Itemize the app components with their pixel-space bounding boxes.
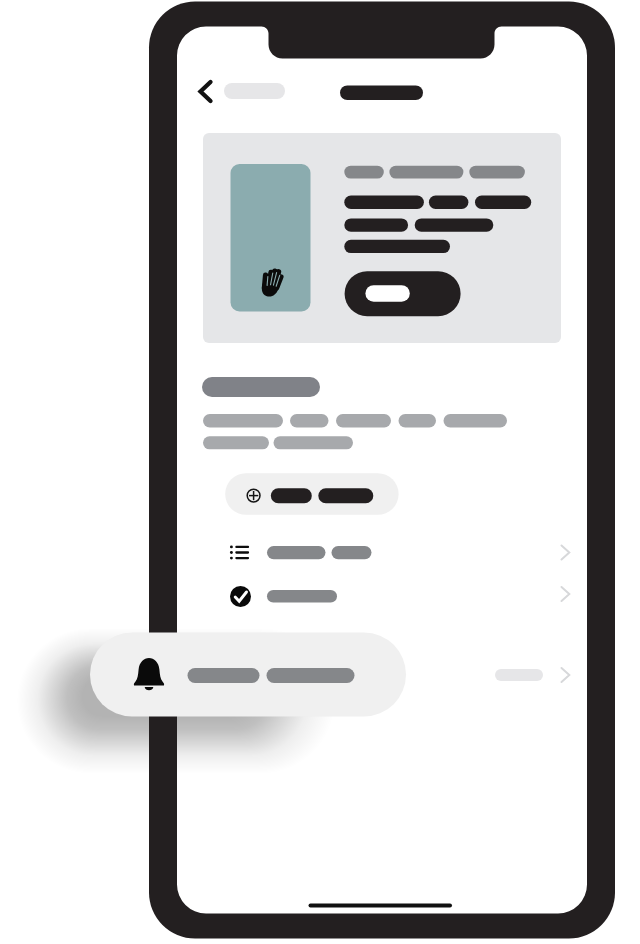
button[interactable]: Completed item [220,578,580,614]
button[interactable]: Third item [220,660,580,690]
button[interactable]: Add item [226,474,398,515]
button[interactable]: Primary action [345,272,460,317]
button[interactable]: Notification [90,633,401,716]
button[interactable]: List item [220,536,580,572]
button[interactable]: Back [194,77,220,107]
